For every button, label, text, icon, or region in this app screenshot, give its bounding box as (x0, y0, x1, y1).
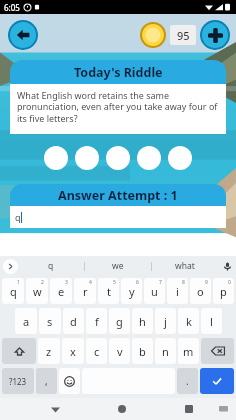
staticText: q (15, 211, 21, 223)
button[interactable]: e (50, 278, 72, 304)
staticText: 1 (17, 279, 20, 286)
staticText: o (197, 284, 204, 299)
button[interactable]: Letter slot 1 (44, 146, 68, 170)
button[interactable]: Coins (140, 22, 166, 48)
staticText: 3 (65, 279, 68, 286)
button[interactable]: ?123 (2, 368, 34, 394)
staticText: 6:05 (4, 2, 20, 13)
staticText: . (186, 374, 189, 388)
button[interactable]: what (152, 256, 218, 276)
button[interactable]: q (10, 206, 226, 228)
staticText: j (164, 314, 167, 329)
staticText: v (117, 344, 123, 359)
button[interactable]: n (155, 338, 176, 364)
button[interactable]: s (39, 308, 61, 334)
button[interactable]: g (109, 308, 130, 334)
staticText: what (175, 260, 195, 272)
button[interactable]: r (74, 278, 96, 304)
staticText: h (139, 314, 146, 329)
button[interactable]: Letter slot 3 (106, 146, 130, 170)
staticText: k (186, 314, 192, 329)
staticText: e (58, 284, 65, 299)
staticText: f (95, 314, 99, 329)
button[interactable]: y (121, 278, 142, 304)
staticText: w (33, 284, 42, 299)
staticText: r (83, 284, 88, 299)
staticText: we (112, 260, 124, 272)
staticText: Answer Attempt : 1 (58, 187, 178, 204)
button[interactable]: Enter (200, 368, 234, 394)
staticText: q (10, 284, 17, 299)
staticText: 7 (159, 279, 162, 286)
button[interactable]: f (86, 308, 107, 334)
staticText: i (176, 284, 179, 299)
button[interactable]: o (190, 278, 211, 304)
button[interactable]: Add coins (200, 20, 230, 50)
button[interactable]: Answer Attempt : 1 (10, 184, 226, 206)
staticText: y (129, 284, 135, 299)
staticText: 5 (113, 279, 116, 286)
staticText: q (48, 260, 54, 272)
button[interactable]: More suggestions (3, 259, 18, 274)
staticText: d (70, 314, 77, 329)
button[interactable]: d (63, 308, 84, 334)
button[interactable]: Letter slot 4 (137, 146, 161, 170)
button[interactable]: Letter slot 2 (75, 146, 99, 170)
button[interactable]: h (132, 308, 153, 334)
staticText: 6 (136, 279, 139, 286)
staticText: p (220, 284, 227, 299)
staticText: 0 (228, 279, 231, 286)
staticText: Today's Riddle (74, 64, 163, 81)
button[interactable]: l (201, 308, 222, 334)
button[interactable]: Shift (2, 338, 36, 364)
button[interactable]: m (178, 338, 199, 364)
button[interactable]: w (26, 278, 48, 304)
staticText: s (47, 314, 53, 329)
button[interactable]: z (38, 338, 60, 364)
staticText: 95 (177, 28, 190, 43)
button[interactable]: p (213, 278, 234, 304)
button[interactable]: Backspace (201, 338, 234, 364)
staticText: ?123 (9, 376, 27, 387)
button[interactable]: j (155, 308, 176, 334)
button[interactable]: . (177, 368, 198, 394)
staticText: What English word retains the same pronu… (17, 89, 219, 125)
button[interactable]: Back (8, 20, 38, 50)
staticText: u (151, 284, 158, 299)
button[interactable]: x (62, 338, 84, 364)
staticText: 9 (205, 279, 208, 286)
staticText: n (162, 344, 169, 359)
button[interactable]: c (86, 338, 107, 364)
button[interactable]: Switch keyboard (214, 400, 232, 418)
button[interactable]: q (2, 278, 24, 304)
button[interactable]: a (15, 308, 37, 334)
button[interactable]: Home (111, 398, 133, 420)
button[interactable]: v (109, 338, 130, 364)
button[interactable]: i (167, 278, 188, 304)
staticText: 4 (89, 279, 92, 286)
staticText: a (23, 314, 30, 329)
button[interactable]: Hide keyboard (44, 398, 66, 420)
button[interactable]: u (144, 278, 165, 304)
button[interactable]: k (178, 308, 199, 334)
button[interactable]: , (36, 368, 57, 394)
staticText: c (94, 344, 100, 359)
staticText: t (107, 284, 111, 299)
button[interactable]: Recents (178, 398, 200, 420)
button[interactable]: t (98, 278, 119, 304)
button[interactable]: q (18, 256, 84, 276)
button[interactable]: Emoji (59, 368, 80, 394)
staticText: g (116, 314, 123, 329)
staticText: m (183, 344, 194, 359)
staticText: x (70, 344, 76, 359)
staticText: z (46, 344, 52, 359)
button[interactable]: b (132, 338, 153, 364)
staticText: , (45, 374, 48, 388)
staticText: 8 (182, 279, 185, 286)
button[interactable]: Voice input (218, 256, 236, 276)
staticText: 2 (41, 279, 44, 286)
button[interactable]: Letter slot 5 (168, 146, 192, 170)
button[interactable]: we (85, 256, 151, 276)
staticText: l (210, 314, 213, 329)
